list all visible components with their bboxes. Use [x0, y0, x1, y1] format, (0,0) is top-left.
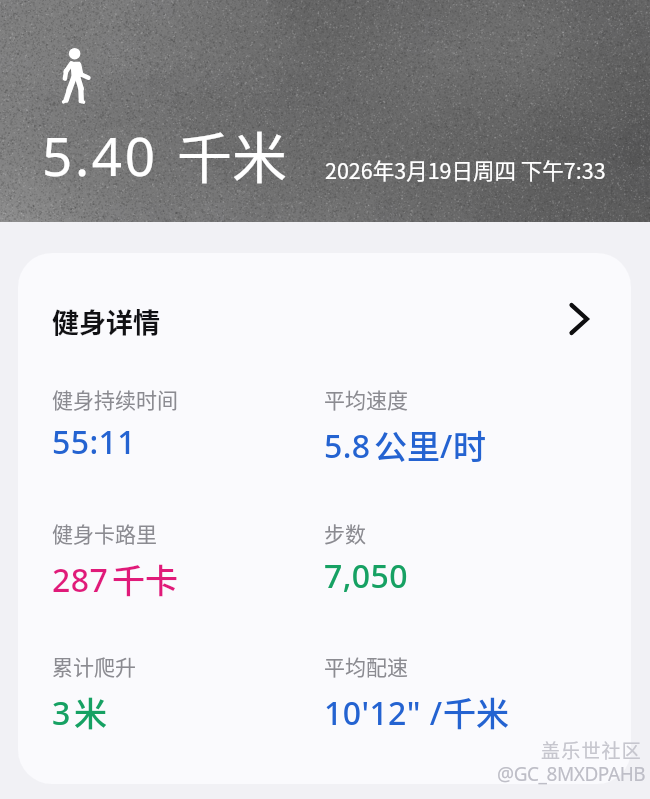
staticText: 公里 — [374, 421, 440, 469]
staticText: 健身详情 — [52, 302, 160, 341]
other: Walking workout — [61, 47, 92, 105]
staticText: 55:11 — [52, 420, 136, 464]
button[interactable]: 健身卡路里 — [52, 518, 320, 618]
button[interactable]: 步数 — [324, 518, 592, 618]
button[interactable]: 健身详情 — [18, 253, 631, 351]
staticText: 千米 — [443, 688, 509, 736]
other: Open workout details — [560, 302, 594, 336]
staticText: 3 — [52, 691, 71, 735]
staticText: / — [440, 424, 453, 468]
staticText: 时 — [453, 421, 486, 469]
staticText: @GC_8MXDPAHB — [497, 761, 646, 787]
staticText: 米 — [74, 688, 107, 736]
staticText: 5.40 — [42, 119, 158, 191]
staticText: 健身卡路里 — [52, 518, 157, 548]
staticText: 平均配速 — [324, 651, 408, 681]
staticText: 平均速度 — [324, 384, 408, 414]
staticText: 千米 — [177, 114, 288, 194]
button[interactable]: 累计爬升 — [52, 651, 320, 751]
staticText: 累计爬升 — [52, 651, 136, 681]
staticText: 步数 — [324, 518, 366, 548]
staticText: 2026年3月19日周四 下午7:33 — [325, 154, 606, 185]
staticText: 健身持续时间 — [52, 384, 178, 414]
button[interactable]: 平均速度 — [324, 384, 592, 484]
staticText: 盖乐世社区 — [541, 736, 643, 764]
staticText: 5.8 — [324, 424, 371, 468]
staticText: 10'12" / — [324, 691, 443, 735]
staticText: 7,050 — [324, 554, 408, 598]
staticText: 287 — [52, 558, 109, 602]
staticText: 千卡 — [112, 555, 178, 603]
button[interactable]: 健身持续时间 — [52, 384, 320, 484]
button[interactable]: 平均配速 — [324, 651, 592, 751]
